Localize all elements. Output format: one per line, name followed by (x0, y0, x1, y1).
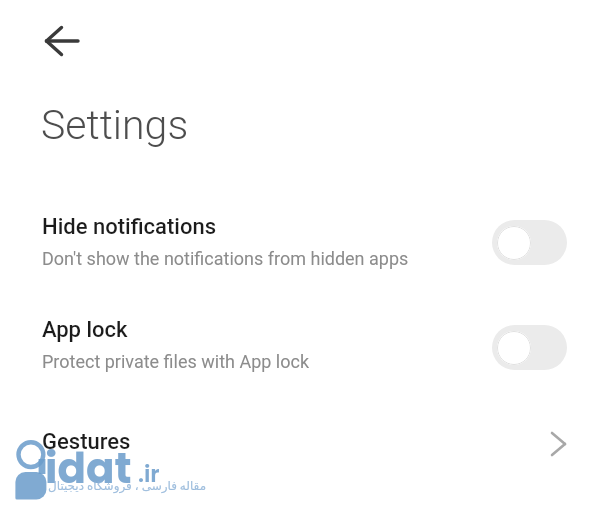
staticText: Protect private files with App lock (42, 351, 310, 372)
staticText: Gestures (42, 429, 131, 455)
staticText: Settings (41, 101, 189, 149)
button[interactable]: App lock (0, 303, 611, 391)
button[interactable] (492, 325, 567, 370)
staticText: مقاله فارسی ، فروشگاه دیجیتال (48, 479, 207, 493)
button[interactable] (38, 17, 86, 65)
staticText: Hide notifications (42, 214, 217, 240)
staticText: .ir (138, 458, 160, 490)
staticText: Don't show the notifications from hidden… (42, 248, 409, 269)
button[interactable] (492, 220, 567, 265)
button[interactable]: Hide notifications (0, 200, 611, 288)
staticText: idat (45, 439, 132, 498)
staticText: App lock (42, 317, 128, 343)
button[interactable]: Gestures (0, 420, 611, 470)
